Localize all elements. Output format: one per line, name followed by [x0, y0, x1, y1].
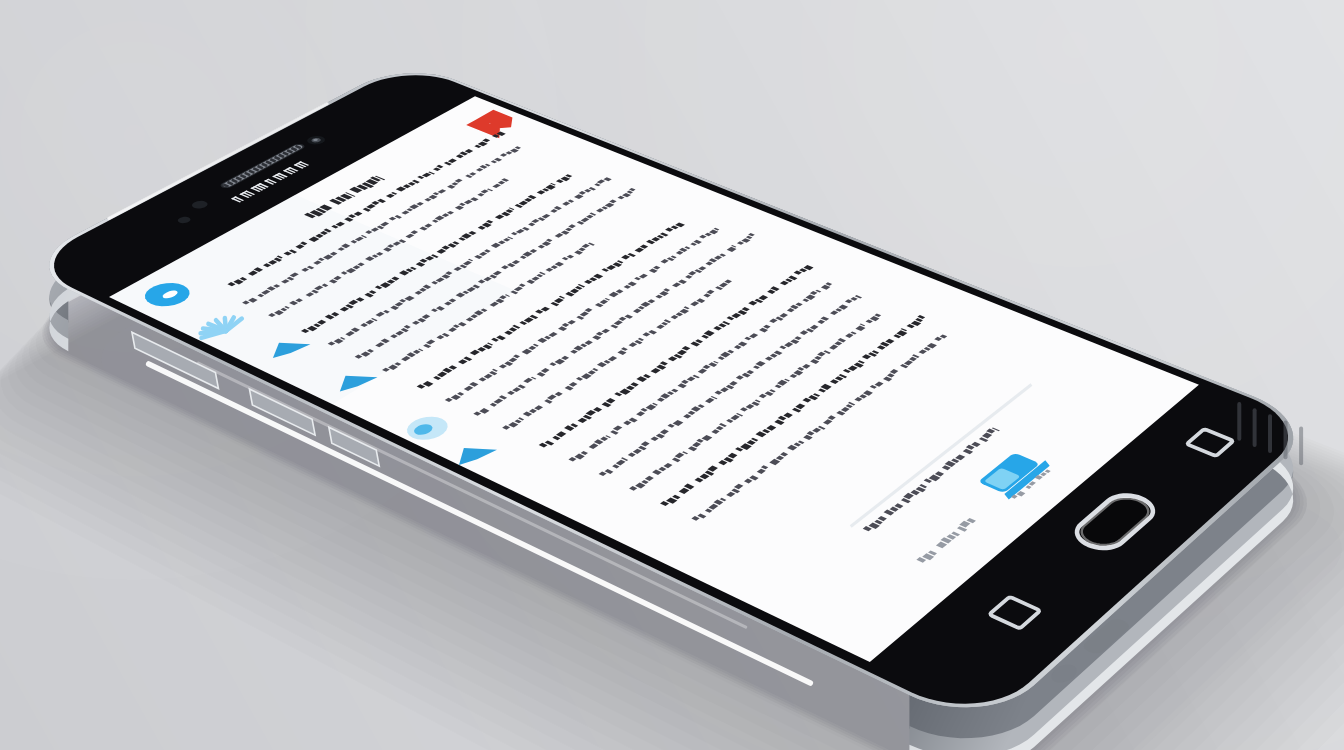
button[interactable]: Samsung Galaxy phone showing an article … — [0, 0, 1344, 750]
